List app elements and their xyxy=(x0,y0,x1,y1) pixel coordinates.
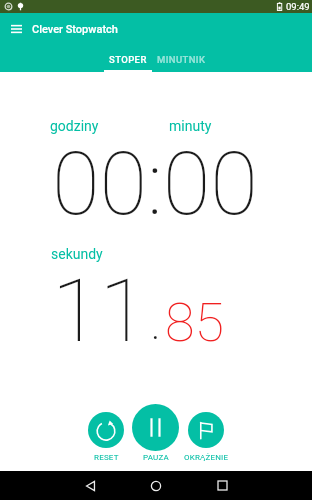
staticText: minuty xyxy=(169,118,212,134)
button[interactable]: PAUZA xyxy=(132,404,179,462)
staticText: PAUZA xyxy=(143,453,169,462)
staticText: STOPER xyxy=(109,54,147,65)
button[interactable]: MINUTNIK xyxy=(154,48,208,70)
button[interactable]: Menu xyxy=(0,13,32,45)
button[interactable]: Back xyxy=(75,471,105,500)
button[interactable]: OKRĄŻENIE xyxy=(177,412,235,462)
staticText: 00:00 xyxy=(52,133,258,235)
button[interactable]: RESET xyxy=(88,412,124,462)
staticText: MINUTNIK xyxy=(157,54,206,65)
button[interactable]: STOPER xyxy=(104,48,152,70)
staticText: 09:49 xyxy=(286,1,310,12)
button[interactable]: Home xyxy=(141,471,171,500)
staticText: sekundy xyxy=(51,246,103,262)
button[interactable]: Recents xyxy=(207,471,237,500)
staticText: 85 xyxy=(165,291,225,354)
staticText: godziny xyxy=(50,118,99,134)
staticText: . xyxy=(150,289,162,352)
staticText: RESET xyxy=(94,453,119,462)
staticText: Clever Stopwatch xyxy=(32,23,118,36)
staticText: 11 xyxy=(52,260,148,362)
staticText: OKRĄŻENIE xyxy=(184,453,229,462)
